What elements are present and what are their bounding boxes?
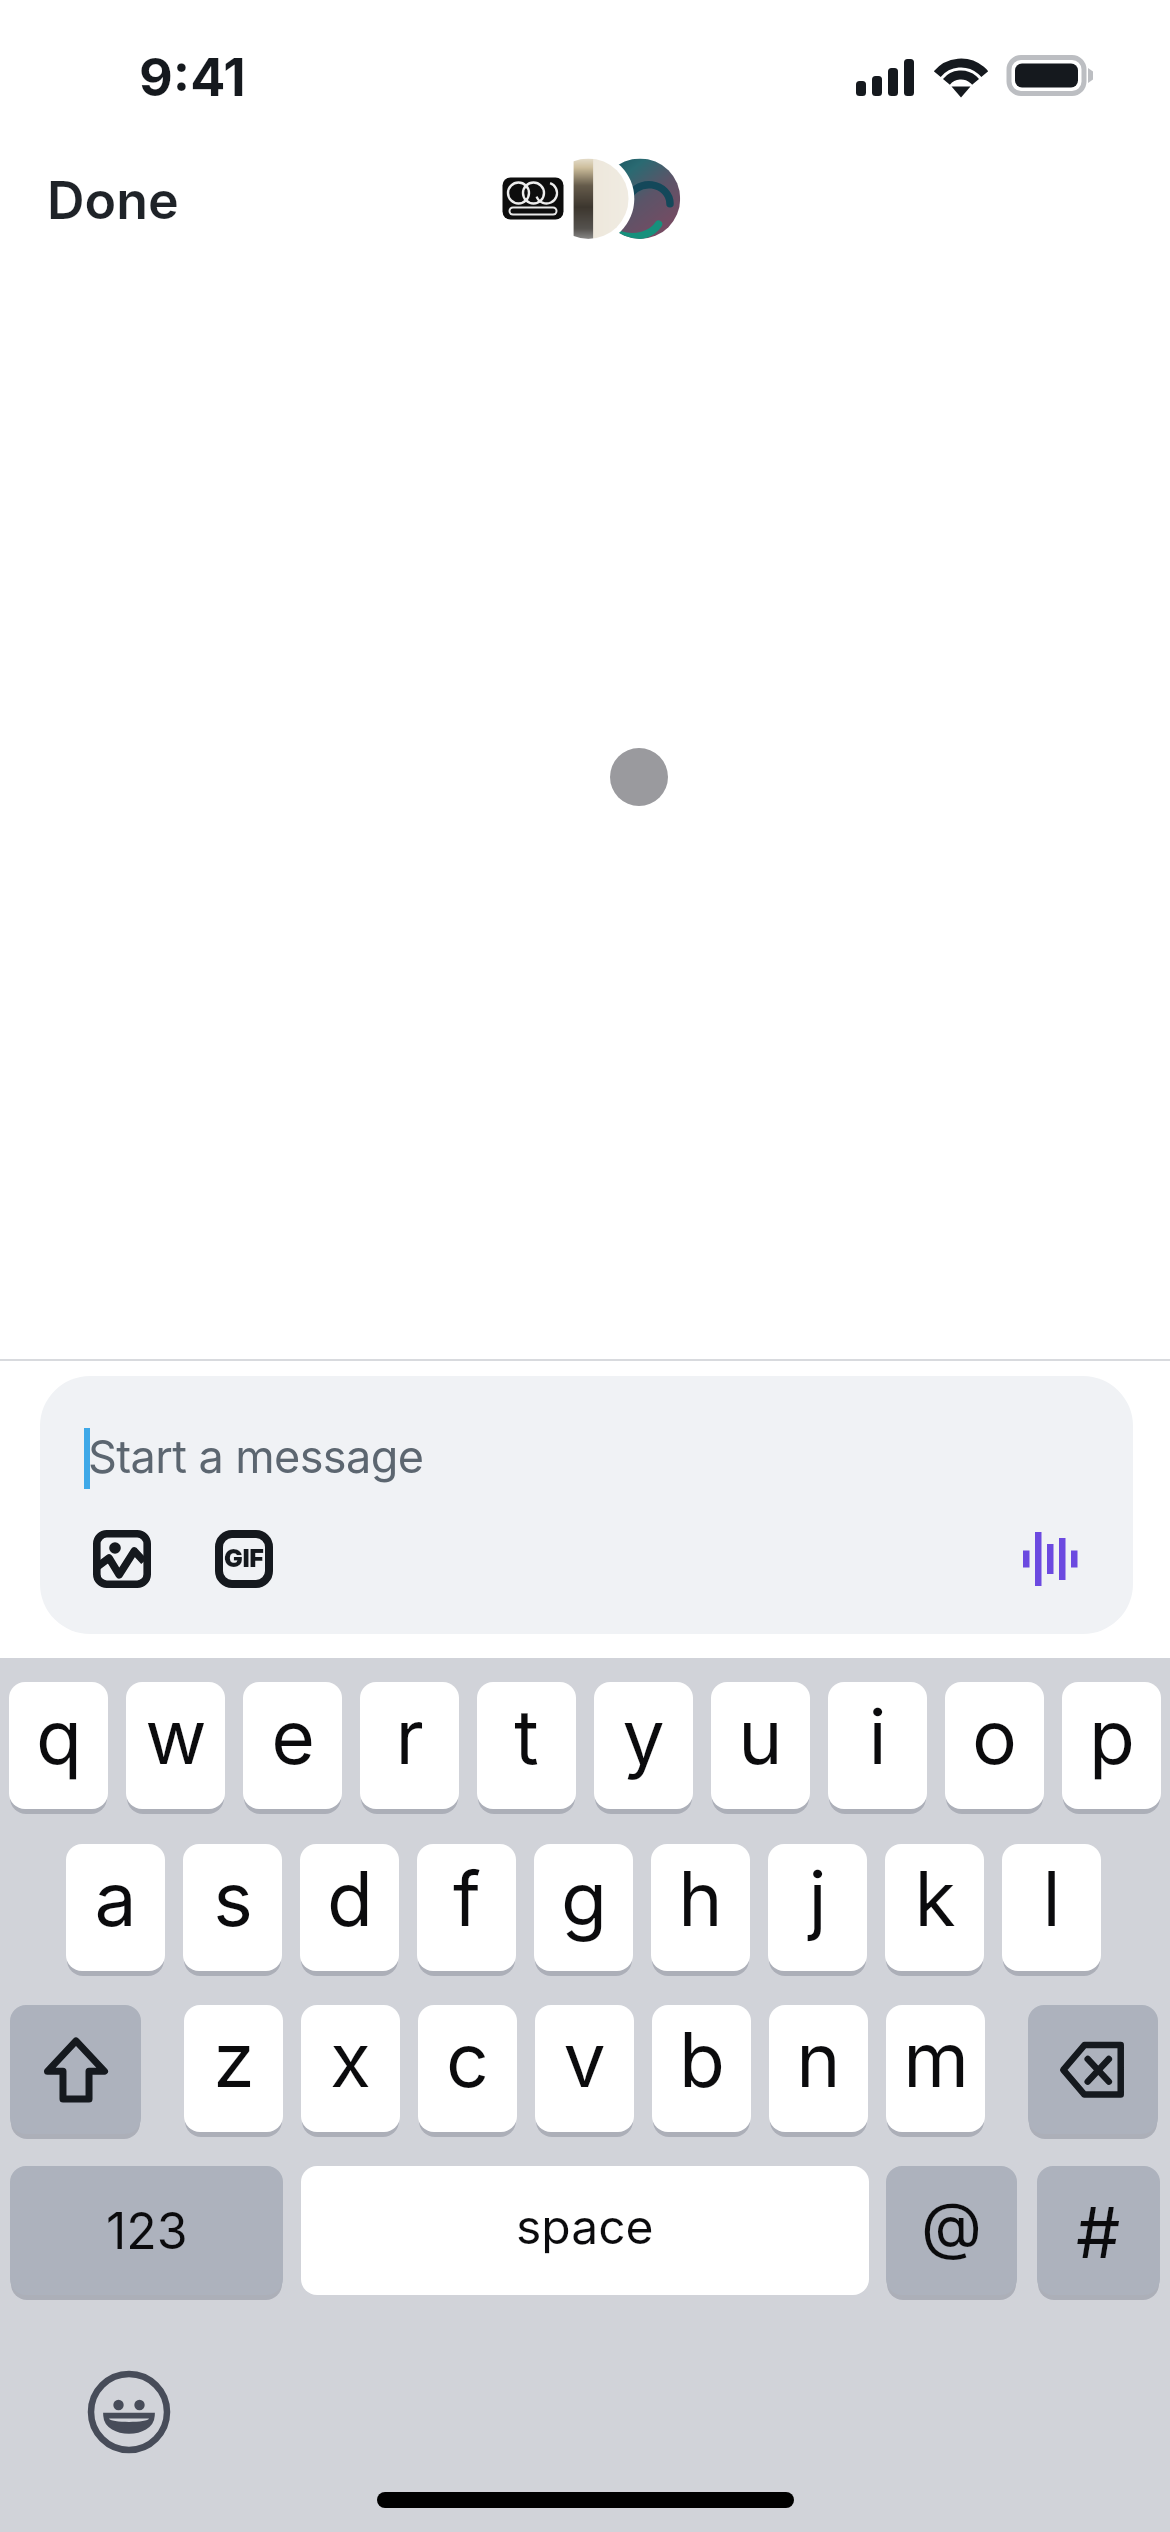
button[interactable]: k [885,1844,984,1971]
staticText: v [563,2014,606,2105]
staticText: u [738,1691,783,1782]
button[interactable]: z [184,2005,283,2132]
staticText: Done [47,169,179,232]
button[interactable]: # [1037,2166,1160,2295]
button[interactable]: space [301,2166,869,2295]
staticText: l [1042,1853,1061,1944]
staticText: o [972,1691,1017,1782]
button[interactable]: c [418,2005,517,2132]
button[interactable]: n [769,2005,868,2132]
button[interactable]: Add photo [83,1520,161,1598]
button[interactable]: t [477,1682,576,1809]
button[interactable]: Backspace [1028,2005,1158,2134]
staticText: space [516,2197,654,2255]
staticText: r [395,1691,424,1782]
staticText: a [94,1853,137,1944]
staticText: g [561,1853,607,1944]
staticText: h [678,1853,723,1944]
button[interactable]: y [594,1682,693,1809]
staticText: k [914,1853,956,1944]
staticText: n [796,2014,841,2105]
staticText: 9:41 [139,46,246,109]
button[interactable]: a [66,1844,165,1971]
button[interactable]: b [652,2005,751,2132]
button[interactable]: h [651,1844,750,1971]
button[interactable]: Emoji [87,2370,171,2454]
button[interactable]: q [9,1682,108,1809]
button[interactable]: Add GIF [205,1520,283,1598]
button[interactable]: Shift [10,2005,141,2134]
button[interactable]: j [768,1844,867,1971]
button[interactable]: @ [886,2166,1017,2295]
button[interactable]: u [711,1682,810,1809]
staticText: p [1089,1691,1135,1782]
staticText: t [514,1691,539,1782]
button[interactable]: Conversation participants [496,155,686,245]
button[interactable]: o [945,1682,1044,1809]
button[interactable]: r [360,1682,459,1809]
button[interactable]: e [243,1682,342,1809]
staticText: @ [921,2187,982,2263]
staticText: b [679,2014,725,2105]
staticText: d [327,1853,373,1944]
button[interactable]: m [886,2005,985,2132]
button[interactable]: s [183,1844,282,1971]
button[interactable]: p [1062,1682,1161,1809]
staticText: s [213,1853,253,1944]
button[interactable]: Start a message [40,1376,1133,1634]
staticText: z [213,2014,255,2105]
staticText: i [868,1691,887,1782]
staticText: q [36,1691,82,1782]
staticText: j [808,1853,827,1944]
button[interactable]: i [828,1682,927,1809]
staticText: Start a message [88,1429,424,1483]
staticText: c [446,2014,489,2105]
staticText: GIF [224,1543,264,1573]
staticText: e [271,1691,315,1782]
staticText: w [145,1691,207,1782]
staticText: x [330,2014,371,2105]
button[interactable]: v [535,2005,634,2132]
button[interactable]: w [126,1682,225,1809]
staticText: # [1076,2190,1121,2275]
staticText: y [622,1691,665,1782]
button[interactable]: l [1002,1844,1101,1971]
button[interactable]: x [301,2005,400,2132]
button[interactable]: Done [27,153,199,248]
staticText: 123 [106,2201,188,2261]
button[interactable]: d [300,1844,399,1971]
button[interactable]: 123 [10,2166,283,2295]
staticText: m [903,2014,969,2105]
button[interactable]: f [417,1844,516,1971]
staticText: f [453,1853,481,1944]
button[interactable]: Voice message [1011,1520,1089,1598]
button[interactable]: g [534,1844,633,1971]
